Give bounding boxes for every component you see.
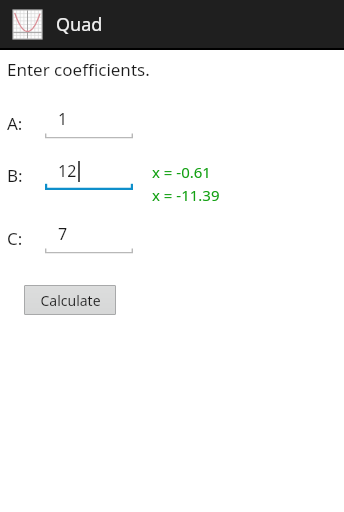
staticText: A:: [7, 112, 23, 135]
button[interactable]: 12: [45, 159, 133, 191]
staticText: 1: [58, 108, 68, 130]
staticText: Enter coefficients.: [7, 58, 150, 81]
staticText: x = -0.61: [152, 162, 211, 182]
button[interactable]: 1: [45, 107, 133, 139]
staticText: x = -11.39: [152, 185, 220, 205]
staticText: Calculate: [40, 291, 101, 310]
button[interactable]: Calculate: [24, 285, 116, 315]
button[interactable]: 7: [45, 222, 133, 254]
staticText: Quad: [56, 12, 103, 37]
staticText: 12: [58, 160, 77, 182]
staticText: B:: [7, 164, 23, 187]
staticText: C:: [7, 227, 23, 250]
staticText: 7: [58, 223, 68, 245]
